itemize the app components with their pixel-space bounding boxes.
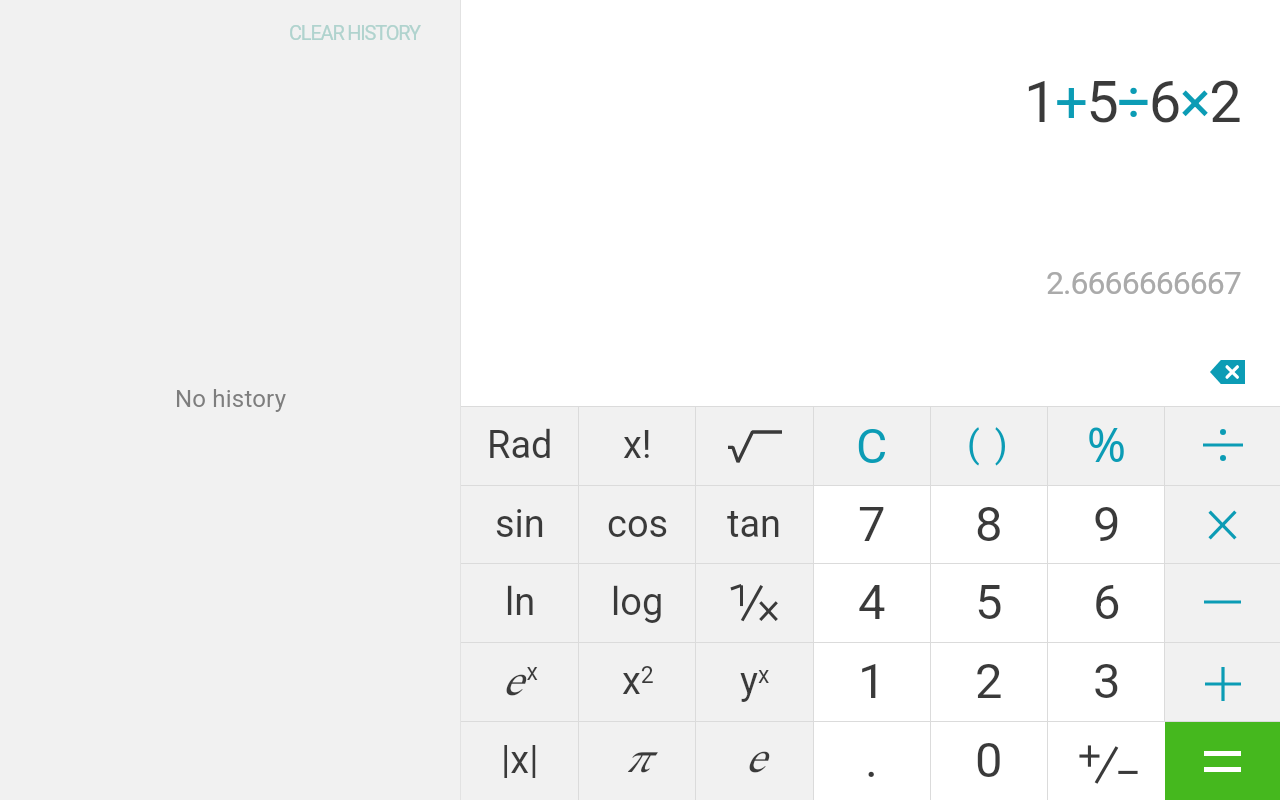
staticText: 1 bbox=[858, 653, 886, 710]
staticText: . bbox=[865, 732, 878, 789]
button[interactable]: 8 bbox=[930, 485, 1047, 564]
button[interactable]: CLEAR HISTORY bbox=[275, 13, 434, 52]
button[interactable]: Square root bbox=[696, 406, 813, 485]
button[interactable]: One over x bbox=[696, 563, 813, 642]
staticText: e bbox=[745, 740, 765, 782]
button[interactable]: Plus bbox=[1165, 642, 1280, 721]
button[interactable]: π bbox=[579, 721, 696, 800]
button[interactable]: 3 bbox=[1048, 642, 1165, 721]
staticText: 9 bbox=[1093, 496, 1121, 553]
staticText: 2 bbox=[975, 653, 1003, 710]
button[interactable]: . bbox=[813, 721, 930, 800]
button[interactable]: Minus bbox=[1165, 563, 1280, 642]
staticText: 5 bbox=[975, 574, 1003, 631]
button[interactable]: x! bbox=[579, 406, 696, 485]
staticText: 2.6666666667 bbox=[1046, 264, 1241, 302]
button[interactable]: sin bbox=[461, 485, 579, 564]
button[interactable]: Backspace bbox=[1202, 347, 1252, 397]
button[interactable]: 0 bbox=[930, 721, 1047, 800]
staticText: ex bbox=[502, 659, 538, 705]
staticText: % bbox=[1087, 412, 1127, 482]
button[interactable]: 4 bbox=[813, 563, 930, 642]
staticText: log bbox=[611, 580, 664, 625]
button[interactable]: Multiply bbox=[1165, 485, 1280, 564]
button[interactable]: 7 bbox=[813, 485, 930, 564]
button[interactable]: log bbox=[579, 563, 696, 642]
button[interactable]: % bbox=[1048, 406, 1165, 485]
button[interactable]: ex bbox=[461, 642, 579, 721]
staticText: |x| bbox=[501, 738, 539, 783]
button[interactable]: ( ) bbox=[930, 406, 1047, 485]
staticText: x! bbox=[623, 423, 652, 468]
staticText: 3 bbox=[1093, 653, 1121, 710]
staticText: yx bbox=[740, 659, 770, 704]
button[interactable]: 6 bbox=[1048, 563, 1165, 642]
staticText: x2 bbox=[622, 659, 654, 704]
button[interactable]: Plus minus bbox=[1048, 721, 1165, 800]
button[interactable]: 2 bbox=[930, 642, 1047, 721]
staticText: Rad bbox=[487, 423, 553, 468]
button[interactable]: Rad bbox=[461, 406, 579, 485]
button[interactable]: 1 bbox=[813, 642, 930, 721]
button[interactable]: Equals bbox=[1165, 721, 1280, 800]
button[interactable]: e bbox=[696, 721, 813, 800]
staticText: 7 bbox=[858, 496, 886, 553]
button[interactable]: ln bbox=[461, 563, 579, 642]
staticText: 8 bbox=[975, 496, 1003, 553]
button[interactable]: x2 bbox=[579, 642, 696, 721]
button[interactable]: 9 bbox=[1048, 485, 1165, 564]
staticText: CLEAR HISTORY bbox=[289, 21, 420, 44]
staticText: ln bbox=[505, 580, 536, 625]
staticText: ( ) bbox=[967, 423, 1011, 466]
staticText: 0 bbox=[975, 732, 1003, 789]
button[interactable]: yx bbox=[696, 642, 813, 721]
staticText: tan bbox=[727, 502, 782, 547]
staticText: π bbox=[625, 740, 650, 782]
staticText: 4 bbox=[858, 574, 886, 631]
staticText: 6 bbox=[1093, 574, 1121, 631]
staticText: 1+5÷6×2 bbox=[1024, 68, 1241, 136]
staticText: No history bbox=[175, 385, 287, 413]
staticText: cos bbox=[607, 502, 669, 547]
button[interactable]: tan bbox=[696, 485, 813, 564]
staticText: C bbox=[856, 418, 888, 474]
button[interactable]: Divide bbox=[1165, 406, 1280, 485]
button[interactable]: cos bbox=[579, 485, 696, 564]
button[interactable]: 5 bbox=[930, 563, 1047, 642]
staticText: sin bbox=[495, 502, 545, 547]
button[interactable]: C bbox=[813, 406, 930, 485]
button[interactable]: |x| bbox=[461, 721, 579, 800]
